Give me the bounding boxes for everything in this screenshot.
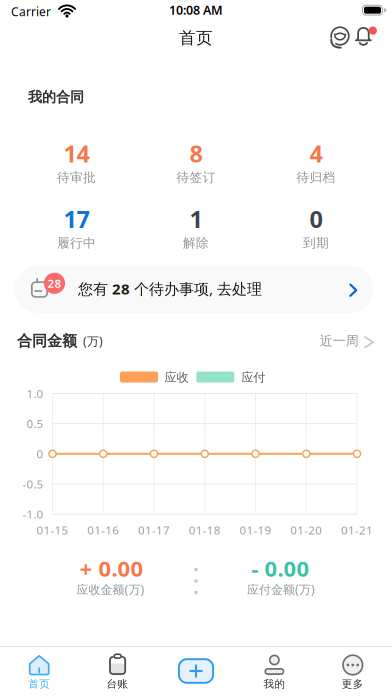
staticText: (万) (83, 333, 103, 349)
button[interactable]: 4 (256, 139, 376, 191)
staticText: 8 (189, 137, 202, 169)
staticText: 应收 (164, 370, 188, 385)
button[interactable]: 28 (13, 264, 375, 314)
staticText: 我的合同 (28, 88, 84, 106)
button[interactable]: 我的 (235, 646, 313, 696)
staticText: 01-17 (138, 522, 170, 538)
staticText: 01-15 (36, 522, 68, 538)
staticText: 14 (63, 137, 89, 169)
staticText: 应付 (241, 370, 265, 385)
button[interactable]: 1 (136, 205, 256, 257)
button[interactable]: 台账 (79, 646, 157, 696)
staticText: 01-18 (189, 522, 221, 538)
button[interactable]: 消息 (352, 24, 380, 54)
staticText: 近一周 (320, 333, 359, 349)
button[interactable]: 新建 (178, 658, 214, 684)
staticText: 应付金额(万) (247, 581, 315, 597)
staticText: 首页 (179, 28, 213, 48)
staticText: 台账 (107, 677, 129, 691)
staticText: 1 (189, 203, 202, 235)
staticText: 待审批 (57, 169, 96, 185)
staticText: 01-16 (87, 522, 119, 538)
staticText: - 0.00 (251, 553, 309, 583)
staticText: 履行中 (57, 235, 96, 251)
staticText: 解除 (183, 235, 209, 251)
staticText: 1.0 (26, 386, 43, 401)
staticText: 更多 (342, 677, 364, 691)
staticText: 01-20 (290, 522, 322, 538)
staticText: 17 (63, 203, 89, 235)
staticText: 01-19 (239, 522, 271, 538)
staticText: 到期 (303, 235, 329, 251)
button[interactable]: 0 (256, 205, 376, 257)
staticText: 10:08 AM (169, 1, 223, 18)
staticText: 合同金额 (17, 332, 77, 350)
button[interactable]: 17 (16, 205, 136, 257)
staticText: 我的 (263, 677, 285, 691)
staticText: 您有 28 个待办事项, 去处理 (78, 279, 262, 299)
staticText: Carrier (11, 3, 51, 20)
staticText: -0.5 (22, 476, 43, 492)
staticText: 首页 (28, 677, 50, 691)
staticText: -1.0 (22, 506, 43, 522)
staticText: 4 (309, 137, 322, 169)
button[interactable]: 客服 (326, 23, 354, 53)
staticText: 0 (36, 446, 43, 462)
button[interactable]: 首页 (0, 646, 78, 696)
staticText: 应收金额(万) (76, 581, 144, 597)
button[interactable]: 14 (16, 139, 136, 191)
staticText: 0 (309, 203, 322, 235)
staticText: 0.5 (26, 416, 43, 431)
staticText: 01-21 (341, 522, 373, 538)
staticText: 待签订 (176, 169, 215, 185)
button[interactable]: 8 (136, 139, 256, 191)
button[interactable]: 近一周 (312, 328, 378, 354)
staticText: 待归档 (296, 169, 335, 185)
button[interactable]: 更多 (314, 646, 392, 696)
staticText: 28 (47, 275, 61, 291)
staticText: + 0.00 (79, 553, 143, 583)
